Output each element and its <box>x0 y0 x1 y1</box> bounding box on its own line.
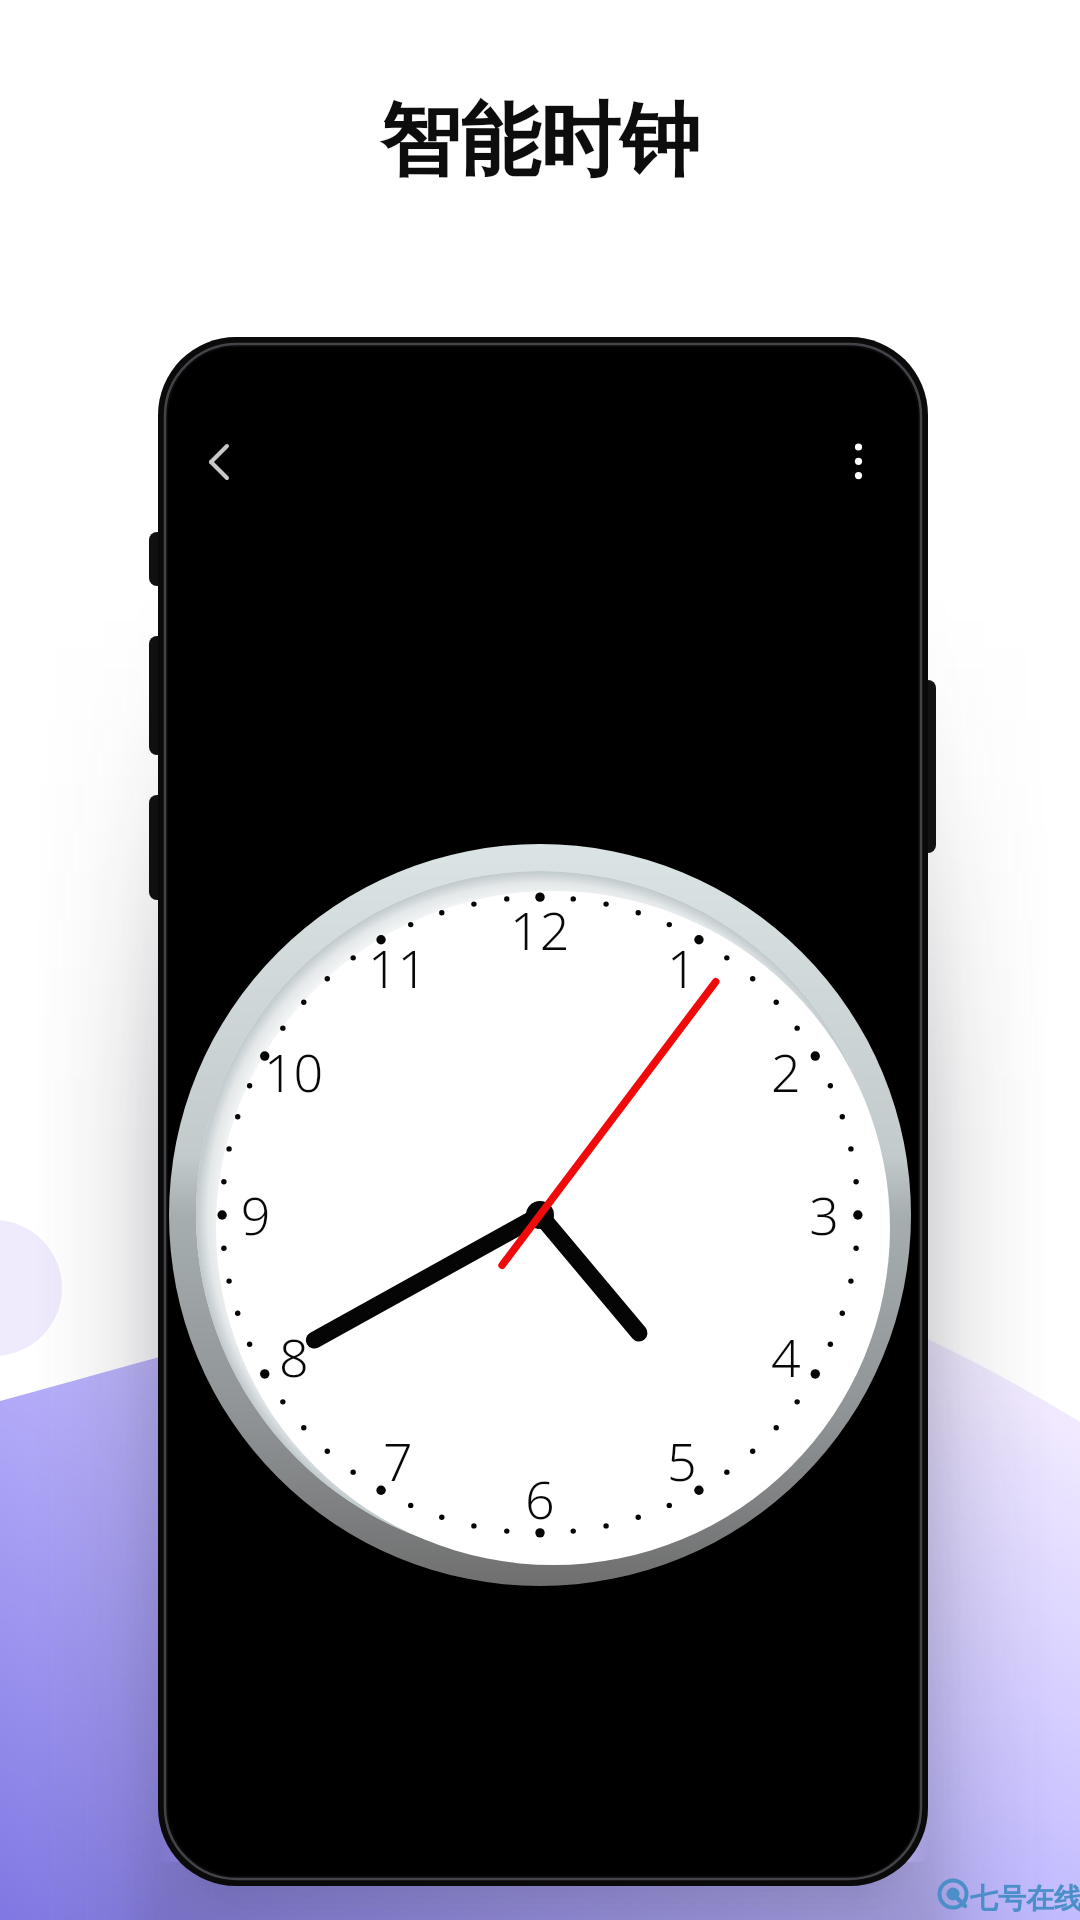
staticText: 七号在线 <box>970 1881 1080 1916</box>
button[interactable]: More options <box>813 422 903 512</box>
staticText: 智能时钟 <box>380 91 700 192</box>
button[interactable]: Back <box>186 422 276 512</box>
